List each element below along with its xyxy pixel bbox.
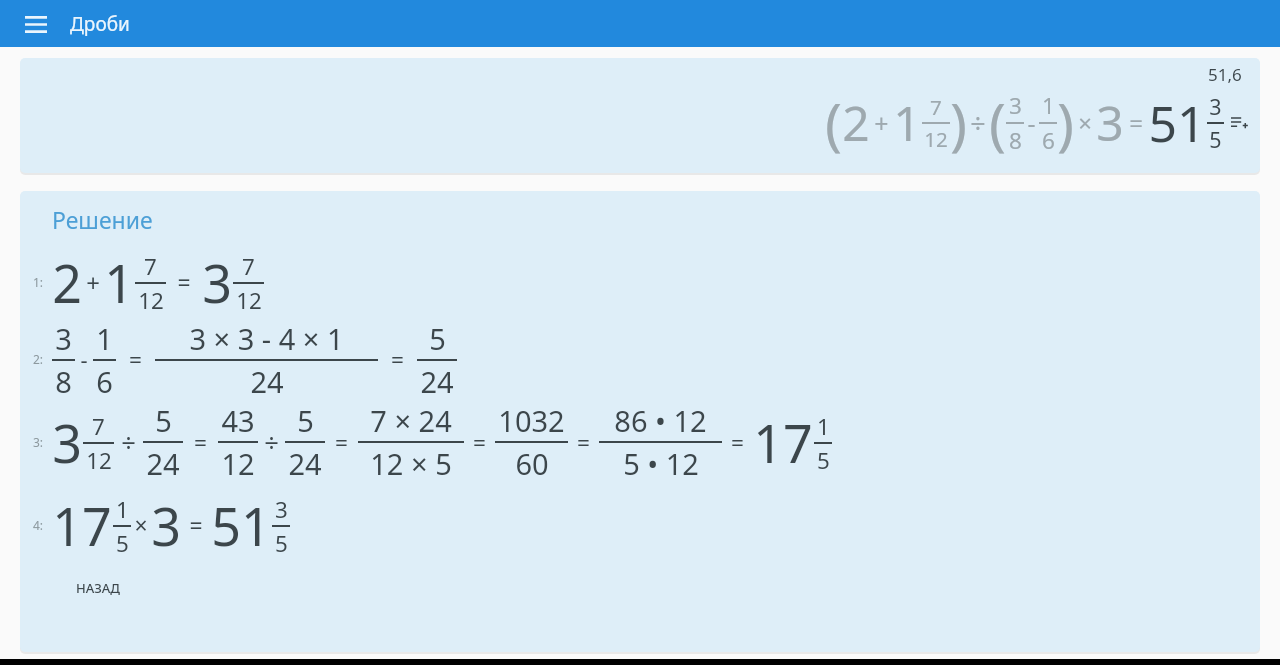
staticText: 24 [250, 362, 284, 399]
staticText: 5 [275, 528, 288, 558]
staticText: + [86, 266, 100, 299]
staticText: 4: [33, 517, 44, 533]
staticText: 2: [33, 351, 44, 367]
staticText: 3 [52, 407, 82, 478]
staticText: 24 [420, 362, 454, 399]
staticText: 5 [297, 401, 314, 440]
staticText: 12 [86, 445, 112, 475]
staticText: = [1129, 106, 1143, 139]
staticText: 12 [236, 285, 262, 315]
staticText: - [80, 344, 88, 374]
staticText: 24 [288, 444, 322, 483]
staticText: 1 [893, 90, 921, 155]
staticText: = [189, 510, 203, 541]
staticText: 6 [1042, 125, 1055, 156]
staticText: 51,6 [1208, 63, 1242, 86]
staticText: 7 [144, 251, 157, 281]
staticText: 1 [104, 247, 134, 318]
staticText: 17 [753, 407, 813, 478]
staticText: 17 [52, 490, 112, 561]
staticText: × [134, 510, 148, 541]
staticText: 1032 [498, 401, 565, 440]
staticText: 51 [1148, 89, 1206, 157]
staticText: ÷ [970, 104, 986, 141]
staticText: 51 [211, 490, 271, 561]
staticText: 3 [55, 319, 72, 358]
staticText: 3 × 3 - 4 × 1 [189, 319, 344, 358]
staticText: 24 [146, 444, 180, 483]
staticText: 5 [1209, 125, 1222, 154]
staticText: = [391, 344, 404, 375]
staticText: Решение [52, 204, 153, 235]
staticText: 12 × 5 [370, 444, 452, 483]
staticText: ÷ [121, 425, 136, 460]
staticText: 5 [817, 445, 830, 475]
staticText: 6 [96, 362, 113, 399]
staticText: 60 [515, 444, 549, 483]
staticText: 7 [242, 251, 255, 281]
staticText: 5 [116, 528, 129, 558]
staticText: 3 [1009, 90, 1022, 121]
staticText: 3 [275, 494, 288, 524]
button[interactable]: НАЗАД [68, 573, 128, 603]
staticText: 3 [1096, 90, 1124, 155]
staticText: = [177, 267, 191, 298]
staticText: 3 [202, 247, 232, 318]
staticText: 12 [221, 444, 255, 483]
staticText: - [1027, 106, 1036, 140]
staticText: 5 • 12 [623, 444, 699, 483]
staticText: 8 [1009, 125, 1022, 156]
staticText: 12 [924, 125, 948, 153]
staticText: 3 [1209, 92, 1222, 121]
staticText: 2 [842, 90, 870, 155]
staticText: 7 [92, 411, 105, 441]
staticText: = [335, 427, 348, 458]
staticText: ) [950, 84, 967, 161]
staticText: + [874, 106, 889, 140]
staticText: 1 [116, 494, 129, 524]
staticText: = [577, 427, 590, 458]
staticText: 7 [930, 93, 942, 121]
staticText: 86 • 12 [614, 401, 707, 440]
staticText: ( [825, 84, 842, 161]
staticText: ) [1057, 84, 1074, 161]
staticText: 12 [138, 285, 164, 315]
staticText: 1 [1042, 90, 1055, 121]
button[interactable]: Open navigation menu [14, 2, 58, 46]
staticText: = [731, 427, 744, 458]
staticText: 43 [221, 401, 255, 440]
staticText: 3 [151, 490, 181, 561]
staticText: 1: [33, 274, 44, 290]
staticText: 3: [33, 434, 44, 450]
staticText: × [1078, 106, 1092, 139]
staticText: 5 [429, 319, 446, 358]
staticText: = [129, 344, 142, 375]
staticText: = [194, 427, 207, 458]
staticText: ÷ [264, 425, 279, 460]
staticText: 1 [817, 411, 830, 441]
staticText: Дроби [70, 11, 130, 37]
staticText: 8 [55, 362, 72, 399]
staticText: ( [989, 84, 1006, 161]
staticText: = [473, 427, 486, 458]
staticText: 1 [96, 319, 113, 358]
staticText: НАЗАД [76, 579, 120, 597]
staticText: 2 [52, 247, 82, 318]
button[interactable]: 51,6 [20, 58, 1260, 173]
staticText: 5 [155, 401, 172, 440]
staticText: 7 × 24 [370, 401, 452, 440]
